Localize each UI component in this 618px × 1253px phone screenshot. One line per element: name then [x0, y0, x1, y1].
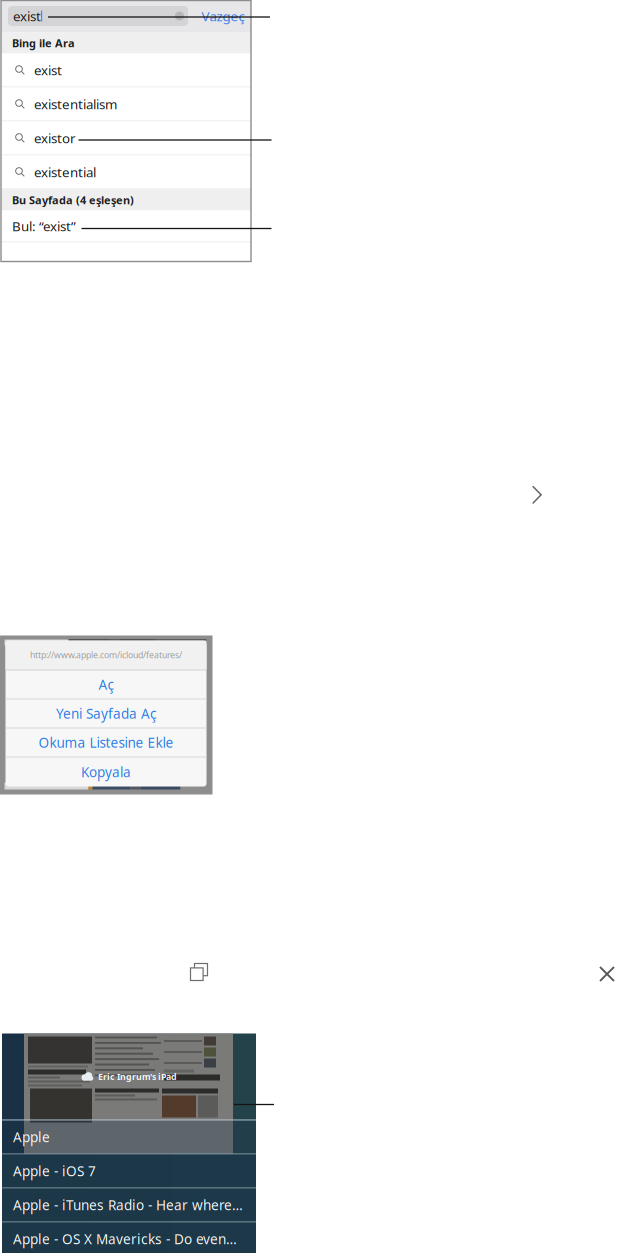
staticText: Apple - iTunes Radio - Hear where…	[13, 1196, 243, 1214]
staticText: Vazgeç	[201, 7, 244, 25]
staticText: Aç	[98, 675, 113, 694]
staticText: Bing ile Ara	[12, 36, 75, 50]
button[interactable]: Okuma Listesine Ekle	[5, 728, 206, 757]
staticText: Apple - iOS 7	[13, 1162, 96, 1180]
staticText: Yeni Sayfada Aç	[56, 704, 156, 723]
button[interactable]: Apple	[2, 1120, 256, 1154]
button[interactable]: Apple - iTunes Radio - Hear where…	[2, 1188, 256, 1222]
button[interactable]: Vazgeç	[197, 6, 249, 26]
staticText: Eric Ingrum's iPad	[98, 1070, 177, 1082]
button[interactable]: Apple - iOS 7	[2, 1154, 256, 1188]
button[interactable]: exist	[1, 53, 251, 87]
staticText: existor	[34, 129, 76, 147]
staticText: Apple	[13, 1128, 50, 1146]
staticText: Apple - OS X Mavericks - Do even…	[13, 1230, 237, 1248]
staticText: exist	[34, 61, 62, 79]
staticText: Bu Sayfada (4 eşleşen)	[12, 193, 134, 207]
staticText: existentialism	[34, 95, 117, 113]
staticText: http://www.apple.com/icloud/features/	[30, 649, 182, 661]
staticText: existential	[34, 163, 96, 181]
button[interactable]: Close	[599, 966, 615, 982]
staticText: Bul: “exist”	[12, 217, 76, 235]
staticText: Kopyala	[81, 763, 131, 781]
button[interactable]: Aç	[5, 670, 206, 699]
button[interactable]: existentialism	[1, 87, 251, 121]
button[interactable]: Apple - OS X Mavericks - Do even…	[2, 1222, 256, 1253]
button[interactable]: Kopyala	[5, 757, 206, 786]
button[interactable]: Yeni Sayfada Aç	[5, 699, 206, 728]
button[interactable]: existential	[1, 155, 251, 189]
button[interactable]: Bul: “exist”	[1, 210, 251, 241]
staticText: exist	[13, 7, 41, 25]
button[interactable]: Tabs	[189, 962, 208, 981]
staticText: Okuma Listesine Ekle	[38, 733, 173, 752]
button[interactable]: existor	[1, 121, 251, 155]
